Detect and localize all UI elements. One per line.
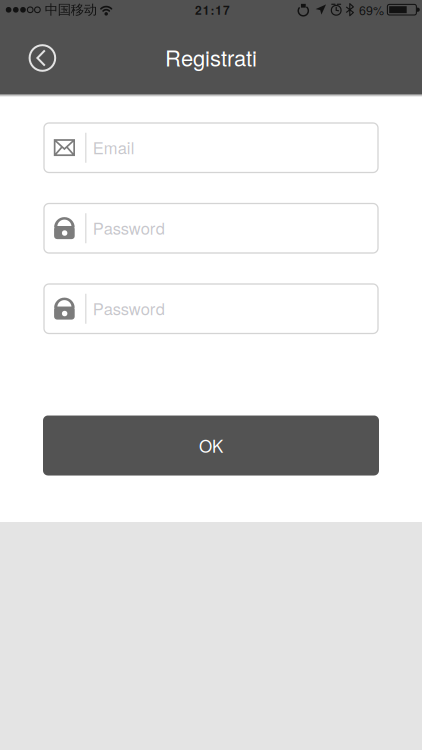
staticText: OK (199, 433, 223, 458)
staticText: Password (93, 296, 165, 320)
button[interactable]: Back (25, 41, 59, 75)
staticText: Email (93, 135, 135, 159)
staticText: Registrati (165, 41, 257, 73)
button[interactable]: Email (44, 123, 378, 172)
staticText: 中国移动 (45, 1, 97, 18)
button[interactable]: OK (43, 415, 379, 475)
staticText: 69% (359, 1, 384, 19)
staticText: Password (93, 216, 165, 239)
button[interactable]: Password (44, 203, 378, 253)
staticText: 21:17 (195, 1, 230, 18)
button[interactable]: Password (44, 284, 378, 333)
